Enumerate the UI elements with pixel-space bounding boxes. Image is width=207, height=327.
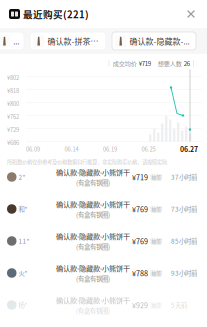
staticText: 26 xyxy=(184,59,190,68)
staticText: ... xyxy=(13,35,19,47)
staticText: 成交均价 xyxy=(113,59,137,68)
button[interactable]: 11* xyxy=(0,225,207,257)
button[interactable]: 和* xyxy=(0,193,207,225)
staticText: ¥818 xyxy=(7,86,19,95)
staticText: 确认款-隐藏款-小熊饼干 xyxy=(56,167,130,177)
staticText: 73小时前 xyxy=(171,204,197,214)
staticText: 抽签 xyxy=(151,237,161,245)
staticText: 抽签 xyxy=(151,301,161,309)
staticText: 确认款-隐藏款-小熊饼干 xyxy=(56,263,130,273)
staticText: 确认款-拼茶款... xyxy=(47,35,101,47)
staticText: 最近购买(221) xyxy=(23,7,89,21)
staticText: 06.09 xyxy=(26,145,40,153)
staticText: 确认款-隐藏款-小熊饼干 xyxy=(56,295,130,305)
staticText: ¥769 xyxy=(132,236,148,246)
button[interactable]: ... xyxy=(0,32,24,50)
staticText: 85小时前 xyxy=(171,236,197,246)
staticText: (有盒有钢圈) xyxy=(76,210,110,219)
staticText: ¥929 xyxy=(132,300,148,310)
staticText: 5天前 xyxy=(171,300,187,310)
staticText: 和* xyxy=(18,204,27,214)
staticText: ¥719 xyxy=(139,59,151,68)
staticText: (有盒有钢圈) xyxy=(76,242,110,251)
button[interactable]: 杨* xyxy=(0,289,207,321)
staticText: 火* xyxy=(18,268,27,278)
staticText: (有盒有钢圈) xyxy=(76,306,110,315)
staticText: ¥729 xyxy=(7,125,19,134)
staticText: ¥719 xyxy=(132,172,148,182)
button[interactable]: 2* xyxy=(0,161,207,193)
staticText: 确认款-隐藏款-... xyxy=(129,35,189,47)
staticText: 确认款-隐藏款-小熊饼干 xyxy=(56,231,130,241)
staticText: 想要人数 xyxy=(158,59,182,68)
staticText: ¥802 xyxy=(7,73,19,82)
staticText: ¥788 xyxy=(132,268,148,278)
staticText: 11* xyxy=(18,236,29,246)
staticText: 杨* xyxy=(18,300,27,310)
button[interactable]: 确认款-拼茶款... xyxy=(30,32,106,50)
staticText: 06.25 xyxy=(141,145,155,153)
staticText: 抽签 xyxy=(151,205,161,213)
button[interactable]: 火* xyxy=(0,257,207,289)
staticText: 2* xyxy=(18,172,25,182)
staticText: 所指数价格仅供参考及价格数据自行推算，非实际购买价格，请按照实际 xyxy=(7,158,167,166)
staticText: 抽签 xyxy=(151,269,161,277)
staticText: 93小时前 xyxy=(171,268,197,278)
staticText: 抽签 xyxy=(151,173,161,181)
staticText: 确认款-隐藏款-小熊饼干 xyxy=(56,199,130,209)
staticText: ¥762 xyxy=(7,112,19,121)
staticText: 06.27 xyxy=(180,144,198,154)
staticText: ¥800 xyxy=(7,99,19,108)
staticText: 37小时前 xyxy=(171,172,197,182)
staticText: (有盒有钢圈) xyxy=(76,178,110,187)
staticText: 06.19 xyxy=(103,145,117,153)
button[interactable]: 确认款-隐藏款-... xyxy=(112,32,196,50)
staticText: 06.14 xyxy=(64,145,78,153)
staticText: ¥769 xyxy=(132,204,148,214)
button[interactable]: 关闭 xyxy=(183,6,199,22)
staticText: (有盒有钢圈) xyxy=(76,274,110,283)
staticText: ¥686 xyxy=(7,138,19,147)
